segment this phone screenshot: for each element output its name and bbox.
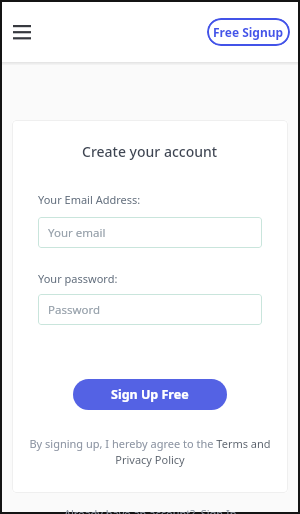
staticText: Already have an account? Sign In: [64, 506, 237, 514]
staticText: Password: [48, 302, 101, 318]
button[interactable]: [12, 24, 31, 40]
button[interactable]: Free Signup: [207, 18, 290, 46]
staticText: Your password:: [38, 271, 118, 286]
staticText: Free Signup: [213, 24, 284, 40]
staticText: Create your account: [82, 142, 218, 161]
button[interactable]: Sign Up Free: [73, 379, 227, 410]
staticText: Your email: [48, 225, 106, 241]
button[interactable]: By signing up, I hereby agree to the Ter…: [20, 436, 280, 468]
staticText: Sign Up Free: [111, 386, 189, 403]
button[interactable]: Password: [38, 294, 262, 325]
button[interactable]: Your email: [38, 217, 262, 248]
staticText: Your Email Address:: [38, 192, 141, 207]
